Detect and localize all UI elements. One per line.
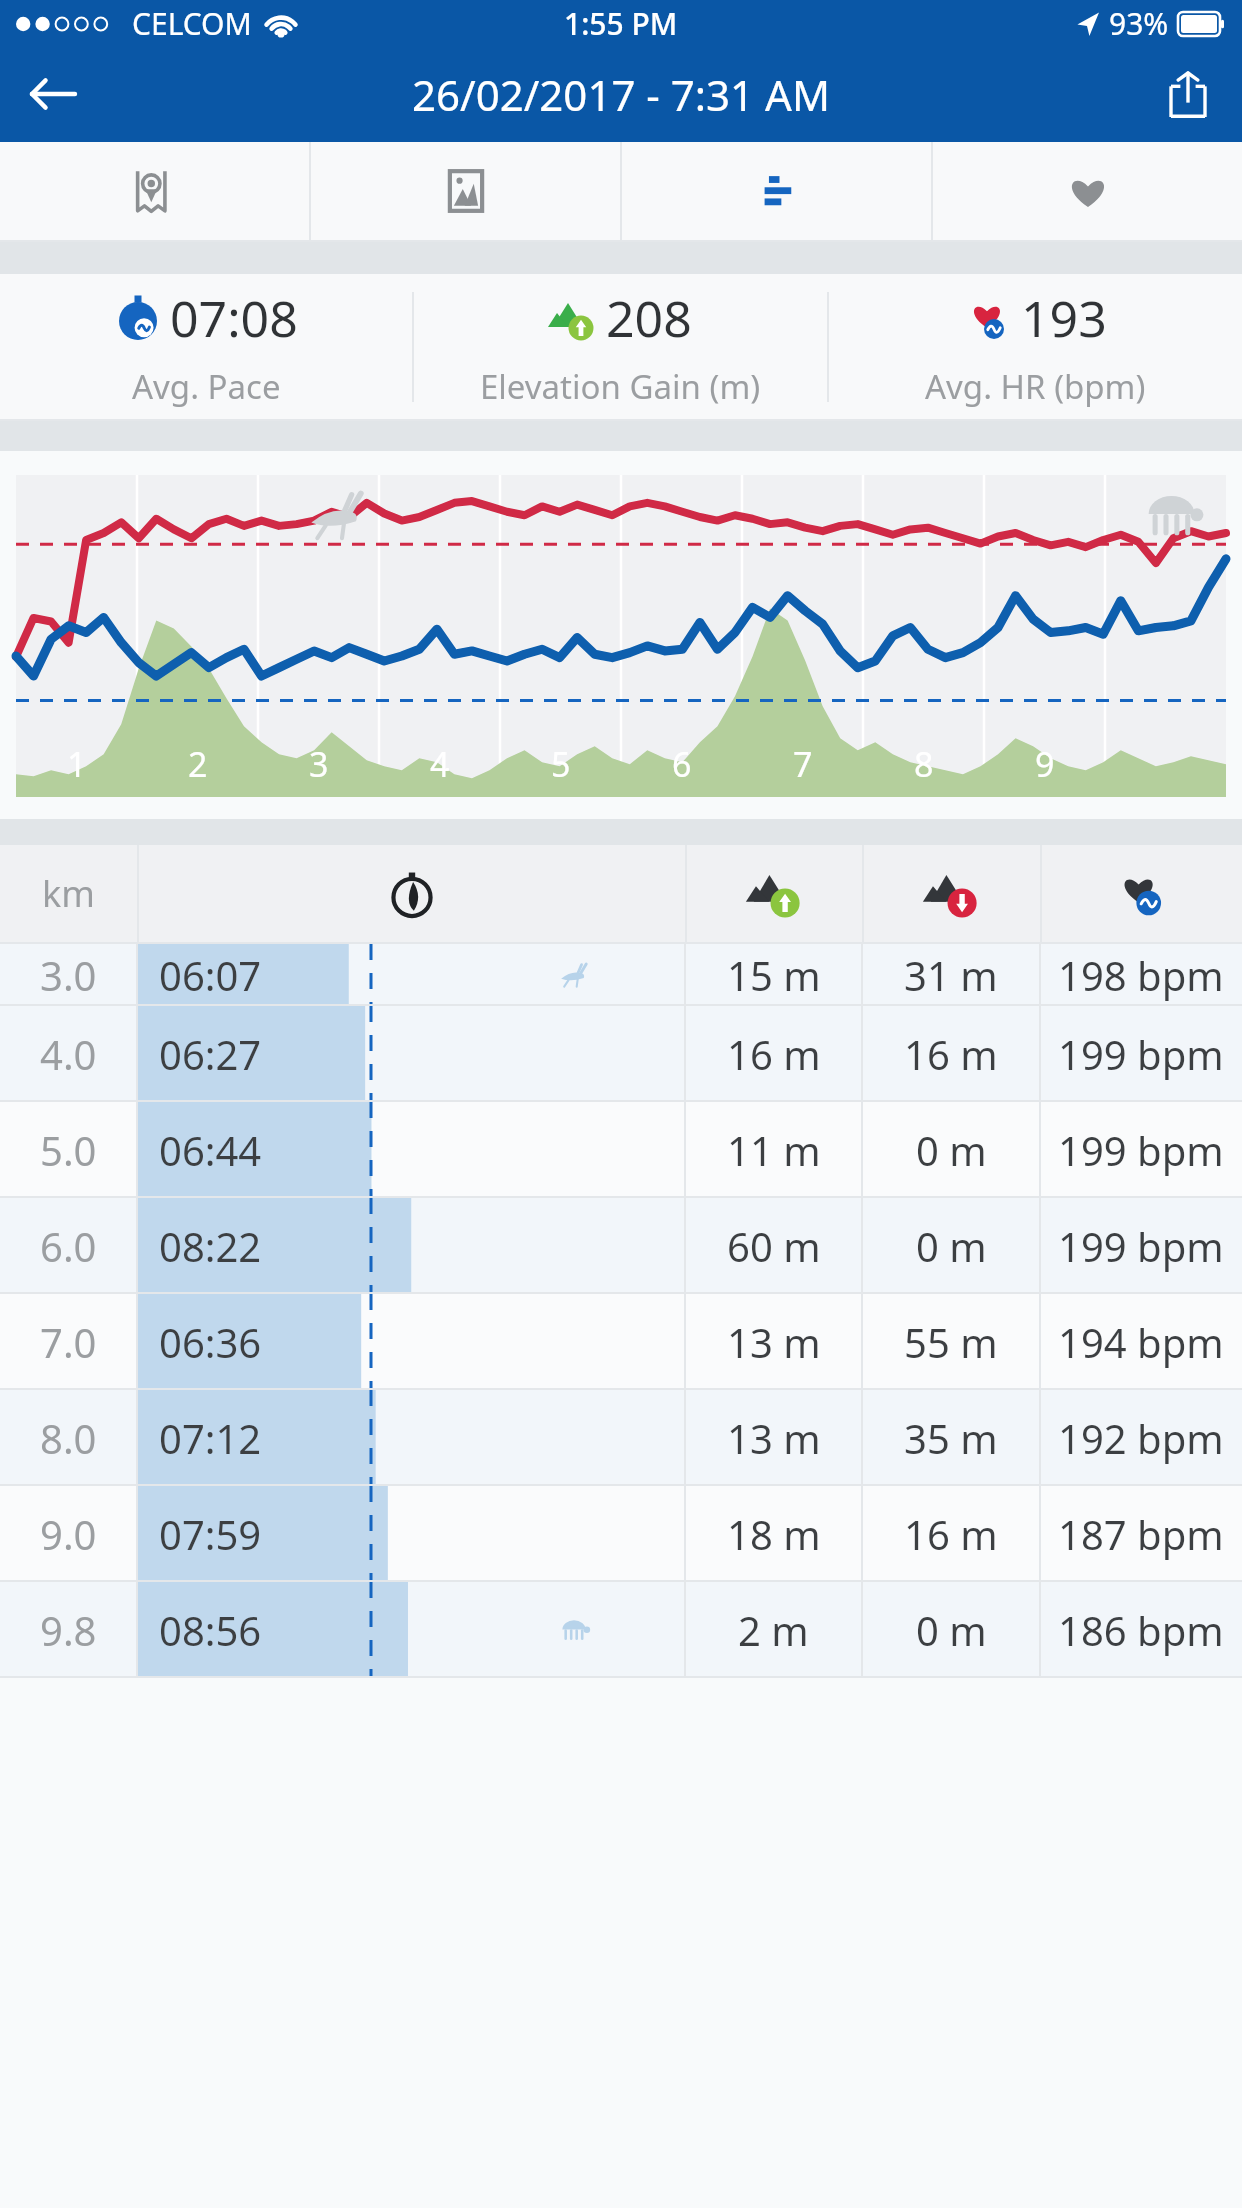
staticText: 8.0 — [40, 1411, 97, 1465]
staticText: 9.8 — [40, 1603, 97, 1657]
staticText: 31 m — [904, 948, 998, 1002]
staticText: 06:44 — [159, 1123, 262, 1177]
button[interactable]: Back — [12, 54, 92, 134]
staticText: 7 — [793, 741, 813, 787]
staticText: 06:27 — [159, 1027, 262, 1081]
staticText: 0 m — [916, 1603, 987, 1657]
staticText: CELCOM — [132, 3, 252, 44]
staticText: Avg. Pace — [132, 364, 281, 409]
staticText: 06:07 — [159, 948, 262, 1002]
staticText: Elevation Gain (m) — [480, 364, 761, 409]
staticText: 187 bpm — [1058, 1507, 1224, 1561]
staticText: 9 — [1035, 741, 1055, 787]
staticText: 55 m — [904, 1315, 998, 1369]
staticText: 199 bpm — [1058, 1027, 1224, 1081]
staticText: 199 bpm — [1058, 1219, 1224, 1273]
staticText: 13 m — [727, 1315, 821, 1369]
staticText: 3.0 — [40, 948, 97, 1002]
staticText: 0 m — [916, 1123, 987, 1177]
staticText: 194 bpm — [1058, 1315, 1224, 1369]
staticText: 8 — [914, 741, 934, 787]
staticText: Avg. HR (bpm) — [925, 364, 1146, 409]
staticText: 5 — [551, 741, 571, 787]
staticText: 08:22 — [159, 1219, 262, 1273]
button[interactable]: 8.0 — [0, 1390, 1242, 1486]
staticText: 60 m — [727, 1219, 821, 1273]
button[interactable]: 4.0 — [0, 1006, 1242, 1102]
button[interactable]: 9.0 — [0, 1486, 1242, 1582]
staticText: 07:12 — [159, 1411, 262, 1465]
staticText: 93% — [1109, 3, 1169, 44]
staticText: 208 — [606, 284, 692, 352]
staticText: 18 m — [727, 1507, 821, 1561]
staticText: 199 bpm — [1058, 1123, 1224, 1177]
staticText: 3 — [309, 741, 329, 787]
button[interactable]: 208 — [414, 274, 827, 419]
staticText: 198 bpm — [1058, 948, 1224, 1002]
staticText: 5.0 — [40, 1123, 97, 1177]
button[interactable]: 5.0 — [0, 1102, 1242, 1198]
staticText: 192 bpm — [1058, 1411, 1224, 1465]
staticText: 16 m — [727, 1027, 821, 1081]
staticText: 6 — [672, 741, 692, 787]
staticText: 0 m — [916, 1219, 987, 1273]
button[interactable]: Statistics — [622, 142, 931, 240]
staticText: 11 m — [727, 1123, 821, 1177]
staticText: 193 — [1021, 284, 1107, 352]
staticText: 07:59 — [159, 1507, 262, 1561]
staticText: 15 m — [727, 948, 821, 1002]
staticText: 06:36 — [159, 1315, 262, 1369]
button[interactable]: Heart rate — [933, 142, 1242, 240]
staticText: 07:08 — [170, 284, 298, 352]
staticText: 16 m — [904, 1507, 998, 1561]
button[interactable]: Share — [1148, 54, 1228, 134]
staticText: 1 — [67, 741, 87, 787]
staticText: 1:55 PM — [564, 3, 678, 44]
button[interactable]: 07:08 — [0, 274, 412, 419]
staticText: 26/02/2017 - 7:31 AM — [412, 66, 830, 123]
staticText: 4.0 — [40, 1027, 97, 1081]
button[interactable]: 7.0 — [0, 1294, 1242, 1390]
staticText: 16 m — [904, 1027, 998, 1081]
staticText: 4 — [430, 741, 450, 787]
staticText: 7.0 — [40, 1315, 97, 1369]
staticText: 2 — [188, 741, 208, 787]
staticText: 35 m — [904, 1411, 998, 1465]
staticText: 6.0 — [40, 1219, 97, 1273]
staticText: 2 m — [738, 1603, 809, 1657]
staticText: 186 bpm — [1058, 1603, 1224, 1657]
staticText: 13 m — [727, 1411, 821, 1465]
button[interactable]: Photos — [311, 142, 620, 240]
button[interactable]: 3.0 — [0, 944, 1242, 1006]
staticText: km — [42, 869, 95, 918]
staticText: 08:56 — [159, 1603, 262, 1657]
button[interactable]: 9.8 — [0, 1582, 1242, 1678]
button[interactable]: 193 — [829, 274, 1242, 419]
staticText: 9.0 — [40, 1507, 97, 1561]
button[interactable]: 6.0 — [0, 1198, 1242, 1294]
button[interactable]: Map — [0, 142, 309, 240]
